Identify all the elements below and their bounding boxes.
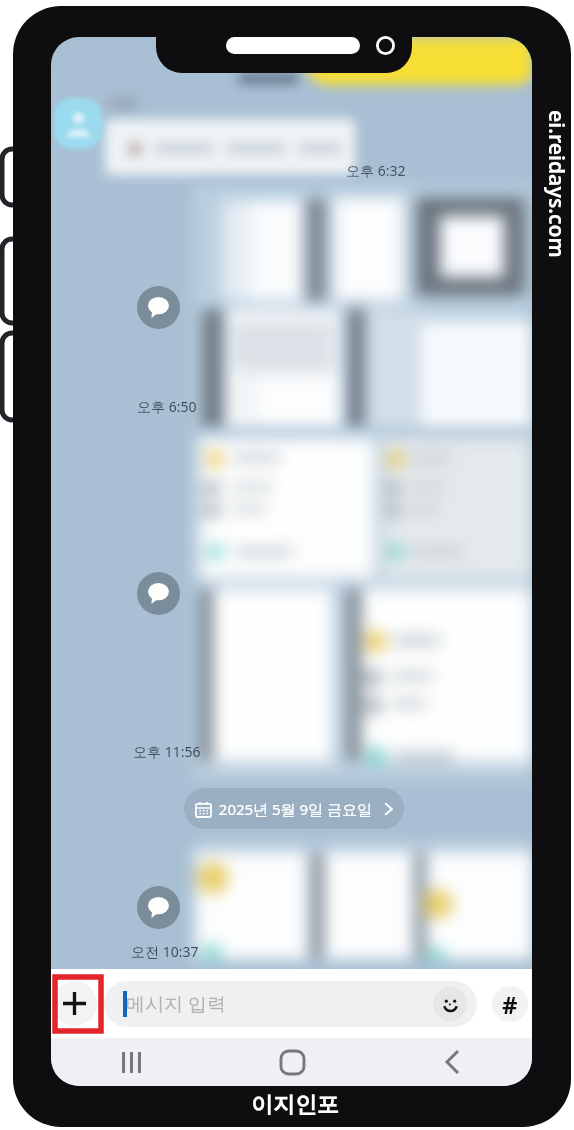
staticText: 오후 6:32 — [346, 161, 406, 180]
button[interactable]: 2025년 5월 9일 금요일 — [184, 788, 404, 829]
button[interactable]: Profile — [137, 572, 180, 615]
button[interactable]: Profile photo — [54, 98, 102, 149]
button[interactable]: Hashtag — [492, 986, 528, 1022]
button[interactable]: 메시지 입력 — [104, 981, 477, 1027]
button[interactable]: Profile — [137, 886, 180, 929]
staticText: # — [502, 988, 518, 1021]
button[interactable]: Emoji — [433, 987, 467, 1021]
button[interactable]: Home — [212, 1038, 372, 1086]
button[interactable]: Recent apps — [51, 1038, 212, 1086]
staticText: 오후 6:50 — [137, 397, 197, 416]
button[interactable]: Add attachment — [52, 981, 97, 1026]
staticText: 오후 11:56 — [133, 742, 201, 761]
button[interactable]: Photo album — [193, 842, 532, 961]
staticText: ei.reidays.com — [543, 110, 571, 258]
staticText: 2025년 5월 9일 금요일 — [211, 799, 384, 819]
button[interactable]: Photo album — [193, 185, 532, 430]
button[interactable]: Back — [372, 1038, 532, 1086]
button[interactable]: Profile — [137, 286, 180, 329]
staticText: 오전 10:37 — [131, 942, 199, 961]
button[interactable]: Photo album — [193, 430, 532, 779]
staticText: 이지인포 — [251, 1091, 339, 1119]
staticText: 메시지 입력 — [126, 991, 226, 1017]
